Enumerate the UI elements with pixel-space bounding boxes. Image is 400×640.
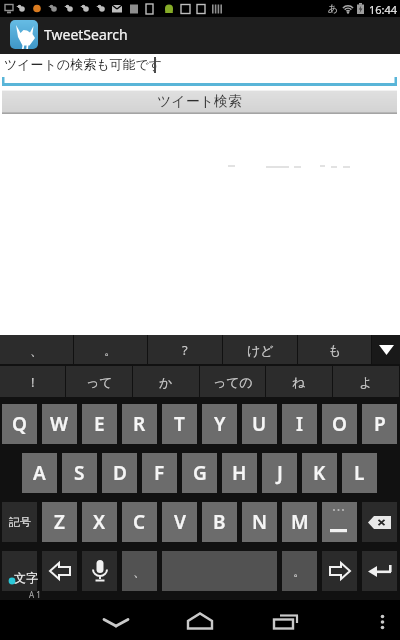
staticText: F	[154, 460, 165, 486]
staticText: 、	[133, 563, 146, 579]
button[interactable]: C	[122, 502, 157, 542]
button[interactable]: F	[142, 453, 177, 493]
staticText: けど	[247, 342, 274, 358]
staticText: G	[193, 460, 207, 486]
button[interactable]	[255, 600, 305, 640]
button[interactable]: S	[62, 453, 97, 493]
button[interactable]: Q	[2, 404, 37, 444]
staticText: !	[31, 373, 35, 391]
staticText: N	[252, 509, 268, 535]
button[interactable]: 文字	[2, 551, 37, 591]
button[interactable]: A	[22, 453, 57, 493]
button[interactable]: 記号	[2, 502, 37, 542]
button[interactable]	[82, 551, 117, 591]
staticText: あ	[328, 2, 339, 15]
staticText: も	[328, 342, 342, 358]
button[interactable]: T	[162, 404, 197, 444]
button[interactable]: J	[262, 453, 297, 493]
button[interactable]: L	[342, 453, 377, 493]
staticText: B	[213, 509, 226, 535]
button[interactable]: U	[242, 404, 277, 444]
button[interactable]: K	[302, 453, 337, 493]
button[interactable]: Z	[42, 502, 77, 542]
button[interactable]: TweetSearch	[0, 17, 400, 54]
button[interactable]: Y	[202, 404, 237, 444]
button[interactable]: W	[42, 404, 77, 444]
button[interactable]: っての	[200, 366, 265, 397]
button[interactable]	[372, 335, 400, 364]
button[interactable]: よ	[333, 366, 399, 397]
staticText: か	[159, 374, 173, 390]
button[interactable]: D	[102, 453, 137, 493]
staticText: って	[86, 374, 113, 390]
button[interactable]: X	[82, 502, 117, 542]
button[interactable]: ツイート検索	[2, 90, 397, 114]
staticText: A	[33, 460, 46, 486]
button[interactable]	[375, 600, 400, 640]
staticText: 、	[30, 342, 43, 358]
button[interactable]: I	[282, 404, 317, 444]
button[interactable]: 。	[74, 335, 147, 364]
button[interactable]: も	[298, 335, 371, 364]
staticText: O	[332, 411, 347, 437]
button[interactable]	[322, 502, 357, 542]
staticText: 記号	[9, 515, 31, 529]
button[interactable]	[42, 551, 77, 591]
staticText: K	[313, 460, 326, 486]
staticText: J	[277, 460, 283, 486]
button[interactable]: ?	[282, 551, 317, 591]
staticText: 。	[104, 342, 117, 358]
staticText: V	[174, 509, 186, 535]
button[interactable]: E	[82, 404, 117, 444]
button[interactable]: ツイートの検索も可能です	[0, 54, 400, 90]
staticText: D	[113, 460, 127, 486]
staticText: Y	[214, 411, 226, 437]
staticText: C	[133, 509, 146, 535]
button[interactable]: G	[182, 453, 217, 493]
button[interactable]: B	[202, 502, 237, 542]
button[interactable]: O	[322, 404, 357, 444]
staticText: ツイート検索	[157, 93, 242, 111]
button[interactable]	[362, 502, 397, 542]
button[interactable]: ね	[266, 366, 332, 397]
button[interactable]: 、	[0, 335, 73, 364]
button[interactable]: !	[0, 366, 65, 397]
button[interactable]	[322, 551, 357, 591]
staticText: W	[50, 411, 69, 437]
staticText: P	[374, 411, 386, 437]
staticText: S	[74, 460, 85, 486]
button[interactable]	[362, 551, 397, 591]
button[interactable]	[175, 600, 225, 640]
staticText: Q	[12, 411, 27, 437]
staticText: 16:44	[369, 2, 398, 17]
button[interactable]: けど	[223, 335, 297, 364]
staticText: I	[296, 411, 304, 437]
staticText: よ	[359, 374, 373, 390]
button[interactable]: !	[122, 551, 157, 591]
staticText: ね	[292, 374, 306, 390]
button[interactable]: ?	[148, 335, 222, 364]
button[interactable]: V	[162, 502, 197, 542]
button[interactable]: P	[362, 404, 397, 444]
button[interactable]: R	[122, 404, 157, 444]
button[interactable]: M	[282, 502, 317, 542]
staticText: TweetSearch	[44, 25, 128, 44]
button[interactable]: って	[66, 366, 132, 397]
staticText: L	[354, 460, 365, 486]
button[interactable]	[95, 600, 145, 640]
staticText: X	[93, 509, 106, 535]
button[interactable]: H	[222, 453, 257, 493]
button[interactable]: か	[133, 366, 199, 397]
staticText: ?	[182, 341, 188, 359]
button[interactable]: N	[242, 502, 277, 542]
